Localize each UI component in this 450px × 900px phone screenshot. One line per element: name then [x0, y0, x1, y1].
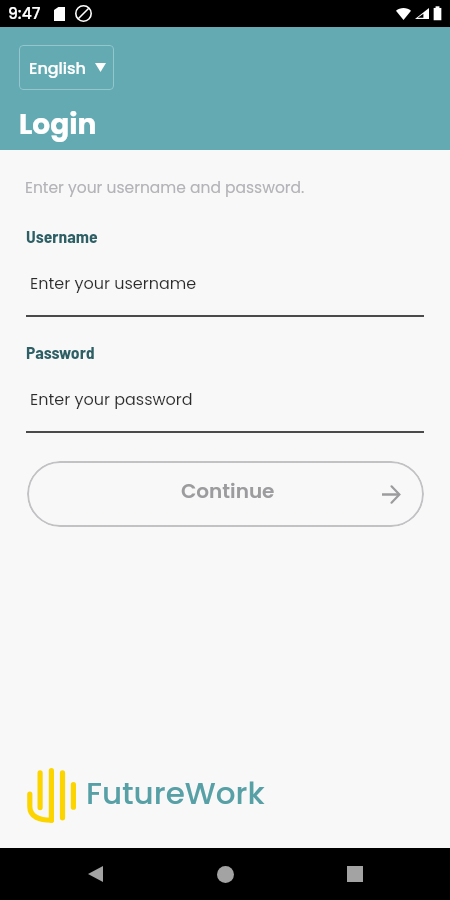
staticText: Username	[26, 225, 98, 246]
button[interactable]: Home	[207, 856, 243, 892]
staticText: Enter your username and password.	[25, 177, 305, 199]
staticText: English	[29, 57, 86, 79]
button[interactable]: English	[19, 45, 114, 90]
button[interactable]: Back	[77, 856, 113, 892]
staticText: FutureWork	[86, 771, 265, 814]
staticText: Login	[19, 105, 97, 144]
staticText: Continue	[181, 477, 275, 505]
staticText: Password	[26, 341, 95, 362]
staticText: Enter your password	[30, 388, 193, 410]
button[interactable]: Continue	[27, 461, 424, 527]
button[interactable]: Recent apps	[337, 856, 373, 892]
staticText: Enter your username	[30, 272, 197, 294]
staticText: 9:47	[8, 3, 41, 25]
